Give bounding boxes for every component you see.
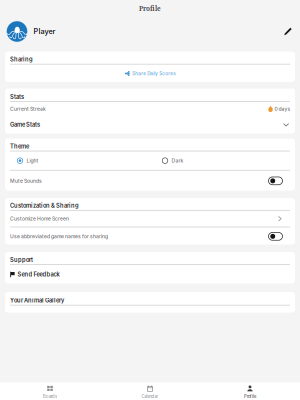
staticText: Share Daily Scores (132, 71, 175, 76)
staticText: Customize Home Screen (10, 216, 69, 222)
button[interactable]: Mute Sounds (5, 171, 295, 191)
staticText: Profile (244, 394, 256, 399)
staticText: Game Stats (10, 121, 40, 128)
staticText: Stats (10, 93, 24, 100)
staticText: Calendar (141, 394, 158, 399)
staticText: Profile (139, 4, 161, 13)
button[interactable]: Player (0, 17, 300, 46)
staticText: Theme (10, 143, 29, 150)
staticText: Support (10, 256, 33, 263)
button[interactable]: Customize Home Screen (5, 211, 295, 227)
button[interactable]: Dark (150, 151, 295, 170)
staticText: Dark (171, 158, 183, 164)
button[interactable]: Calendar (100, 382, 200, 400)
staticText: Light (26, 158, 38, 164)
button[interactable]: Light (5, 151, 150, 170)
staticText: Mute Sounds (10, 178, 42, 184)
staticText: Boards (43, 394, 57, 399)
button[interactable]: Send Feedback (5, 265, 295, 284)
button[interactable]: Share Daily Scores (5, 64, 295, 82)
staticText: Your Animal Gallery (10, 297, 64, 304)
button[interactable]: Game Stats (5, 116, 295, 133)
staticText: Customization & Sharing (10, 202, 79, 209)
staticText: Current Streak (10, 106, 46, 112)
staticText: Send Feedback (17, 271, 59, 278)
button[interactable]: Use abbreviated game names for sharing (5, 227, 295, 245)
button[interactable]: Profile (200, 382, 300, 400)
staticText: Use abbreviated game names for sharing (10, 233, 108, 239)
staticText: Player (33, 27, 55, 36)
staticText: Sharing (10, 56, 33, 63)
staticText: 0 days (274, 106, 290, 112)
button[interactable]: Boards (0, 382, 100, 400)
